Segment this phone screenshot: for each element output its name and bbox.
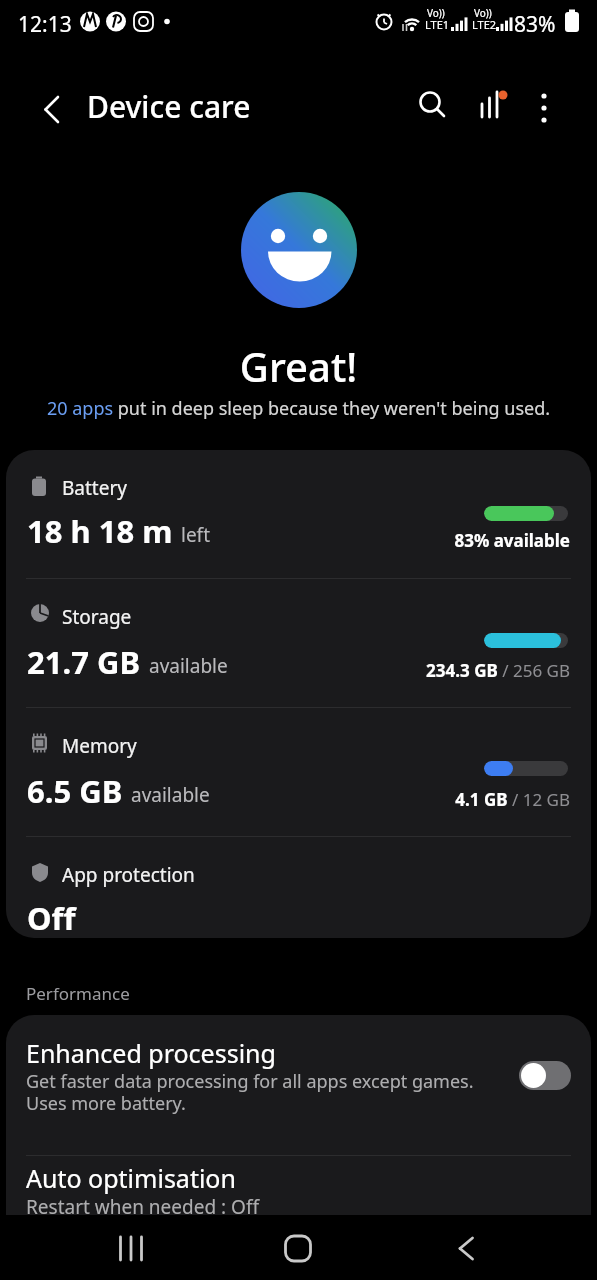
staticText: left xyxy=(181,522,211,548)
staticText: Off xyxy=(27,897,76,938)
button[interactable] xyxy=(410,82,454,126)
staticText: 83% available xyxy=(270,529,570,552)
staticText: Great! xyxy=(0,339,597,393)
staticText: 234.3 GB / 256 GB xyxy=(270,659,570,682)
staticText: Restart when needed : Off xyxy=(26,1194,260,1215)
button[interactable] xyxy=(522,82,566,126)
staticText: 12:13 xyxy=(18,10,72,39)
staticText: App protection xyxy=(62,862,195,888)
button[interactable]: Auto optimisation xyxy=(6,1155,591,1215)
staticText: Performance xyxy=(26,982,130,1005)
staticText: Get faster data processing for all apps … xyxy=(26,1069,474,1094)
staticText: LTE2 xyxy=(472,17,497,32)
button[interactable] xyxy=(440,1225,492,1270)
staticText: 4.1 GB / 12 GB xyxy=(270,788,570,811)
staticText: 20 apps put in deep sleep because they w… xyxy=(0,396,597,421)
staticText: available xyxy=(131,782,210,808)
button[interactable] xyxy=(519,1061,571,1090)
staticText: Enhanced processing xyxy=(26,1036,276,1070)
button[interactable]: Memory xyxy=(6,707,591,836)
button[interactable]: Battery xyxy=(6,450,591,578)
button[interactable]: Enhanced processing xyxy=(6,1015,591,1155)
staticText: Vo)) xyxy=(474,6,492,20)
staticText: Memory xyxy=(62,733,137,759)
staticText: 18 h 18 m xyxy=(27,510,173,552)
staticText: Vo)) xyxy=(427,6,445,20)
button[interactable]: App protection xyxy=(6,836,591,938)
staticText: 83% xyxy=(514,10,556,39)
staticText: 21.7 GB xyxy=(27,641,141,683)
button[interactable] xyxy=(32,84,72,124)
button[interactable] xyxy=(105,1225,157,1270)
staticText: Device care xyxy=(87,86,251,127)
staticText: Battery xyxy=(62,475,127,501)
button[interactable]: Storage xyxy=(6,578,591,707)
staticText: available xyxy=(149,653,228,679)
staticText: LTE1 xyxy=(425,17,450,32)
staticText: Uses more battery. xyxy=(26,1091,186,1116)
staticText: Storage xyxy=(62,604,132,630)
button[interactable] xyxy=(272,1225,324,1270)
staticText: Auto optimisation xyxy=(26,1161,236,1195)
staticText: 6.5 GB xyxy=(27,770,123,812)
button[interactable] xyxy=(468,82,512,126)
